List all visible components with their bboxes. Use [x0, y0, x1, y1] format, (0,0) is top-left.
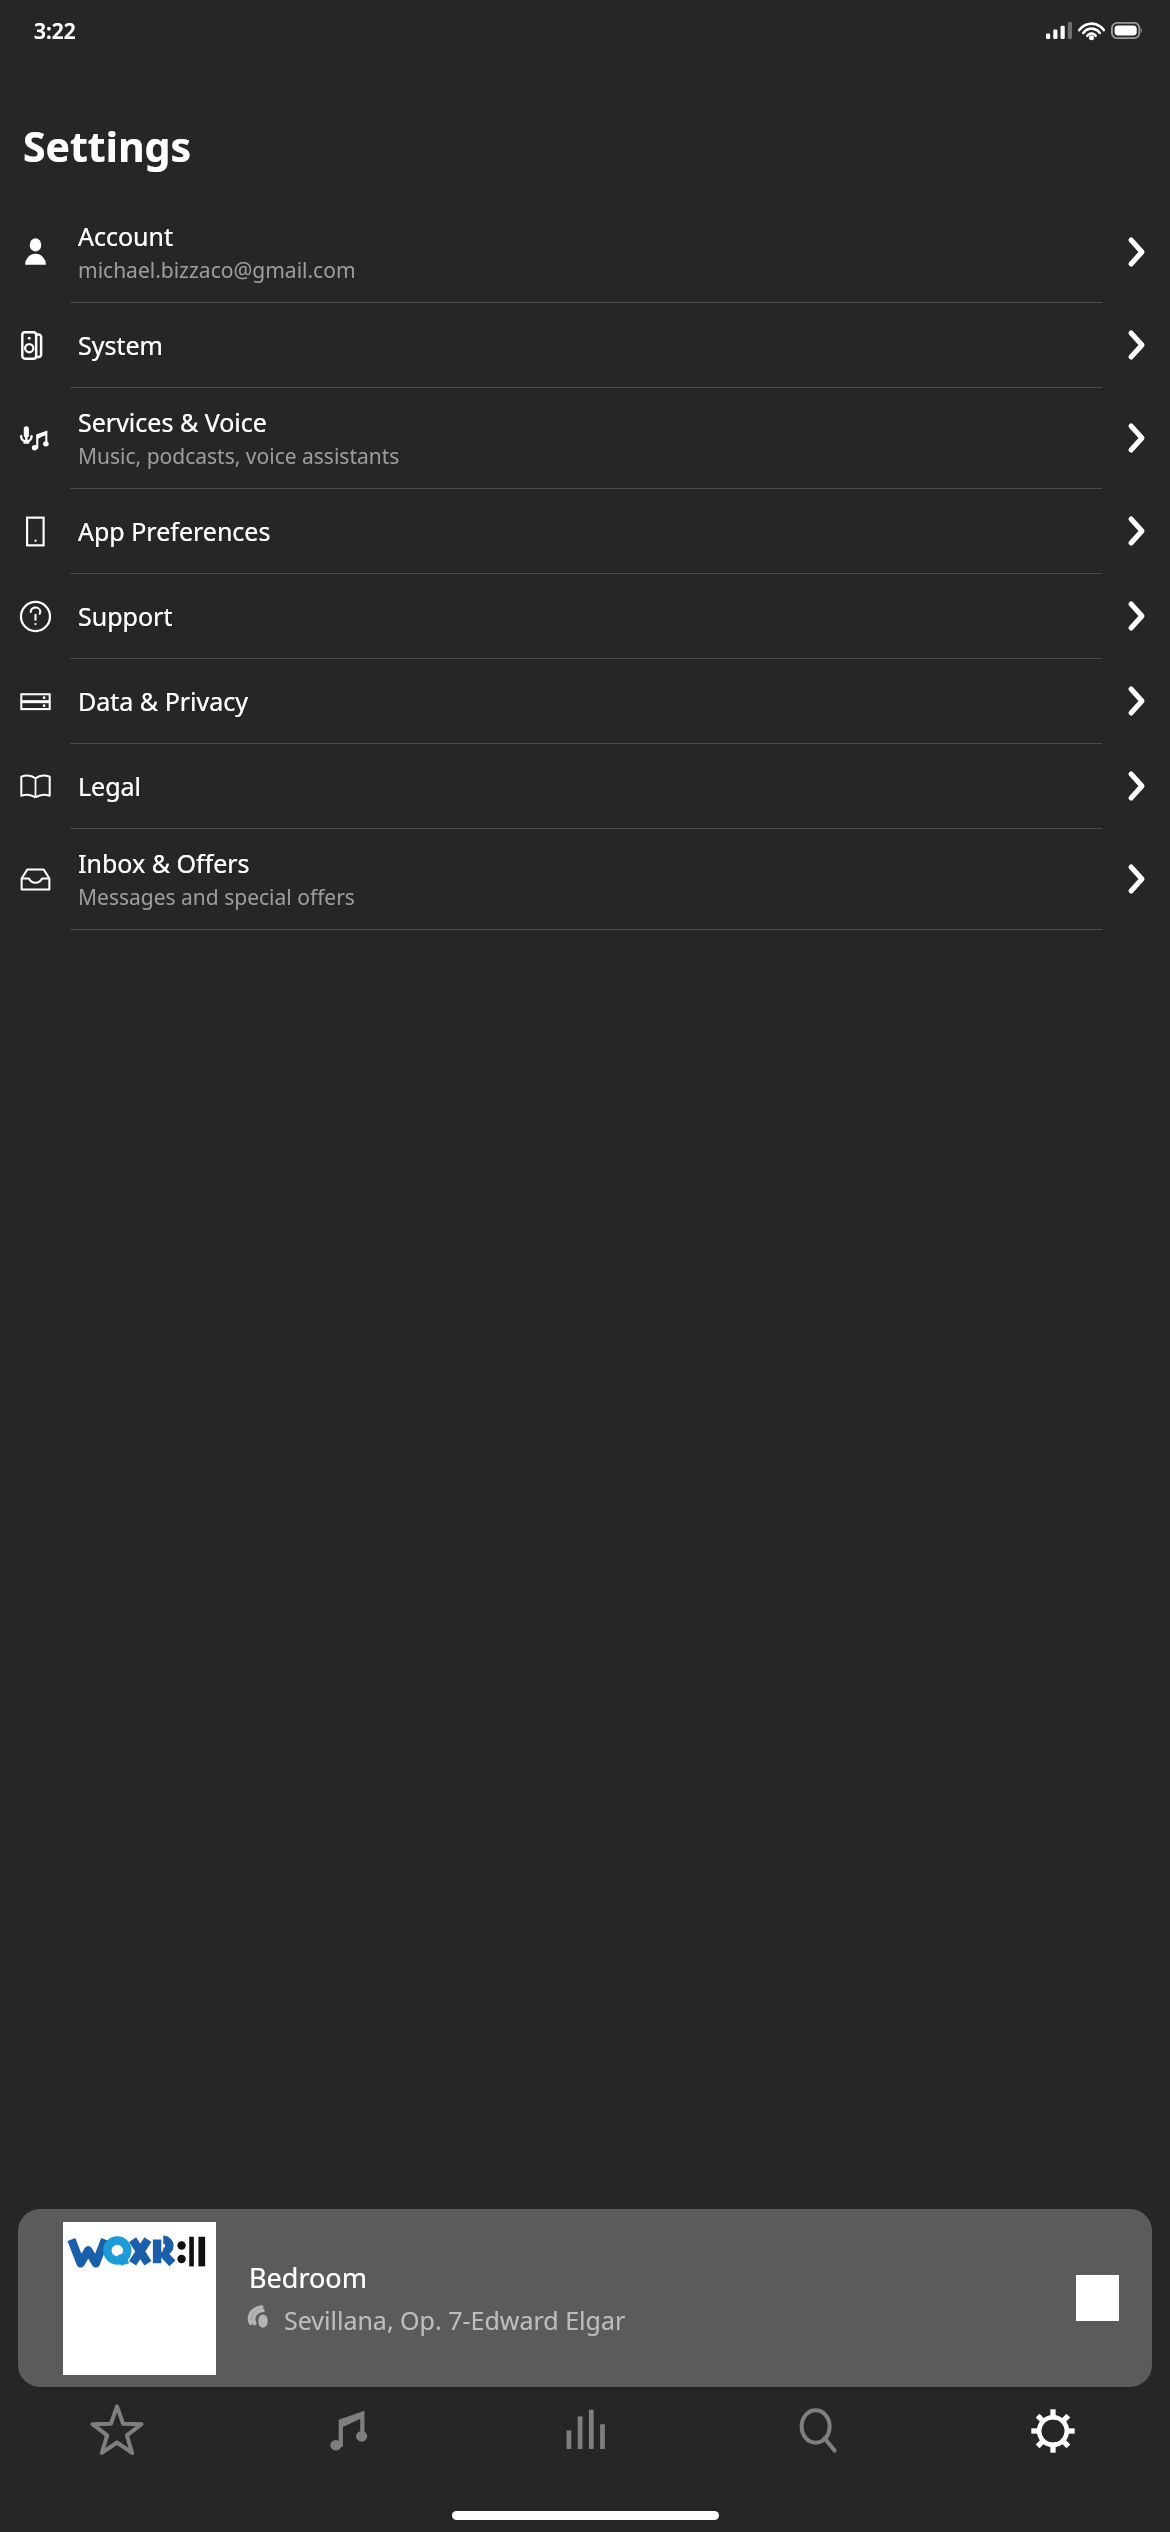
button[interactable]: Bedroom — [18, 2209, 1152, 2387]
staticText: 3:22 — [34, 17, 76, 46]
staticText: App Preferences — [78, 514, 271, 548]
staticText: Sevillana, Op. 7-Edward Elgar — [284, 2303, 626, 2337]
other: Services & Voice — [1102, 388, 1170, 488]
button[interactable]: Inbox & Offers — [0, 829, 1170, 929]
staticText: Legal — [78, 769, 142, 803]
button[interactable]: Services & Voice — [0, 388, 1170, 488]
button[interactable]: Legal — [0, 744, 1170, 828]
staticText: Account — [78, 219, 174, 253]
button[interactable]: Support — [0, 574, 1170, 658]
staticText: Bedroom — [249, 2259, 367, 2296]
button[interactable]: Data & Privacy — [0, 659, 1170, 743]
button[interactable]: Settings — [936, 2393, 1170, 2497]
button[interactable]: Stats — [468, 2393, 702, 2497]
other: Legal — [1102, 744, 1170, 828]
other: Data & Privacy — [1102, 659, 1170, 743]
staticText: Data & Privacy — [78, 684, 249, 718]
button[interactable]: Account — [0, 202, 1170, 302]
button[interactable]: Favorites — [0, 2393, 234, 2497]
button[interactable]: System — [0, 303, 1170, 387]
staticText: michael.bizzaco@gmail.com — [78, 256, 356, 285]
button[interactable]: Search — [702, 2393, 936, 2497]
staticText: System — [78, 328, 163, 362]
staticText: Music, podcasts, voice assistants — [78, 442, 400, 471]
other: App Preferences — [1102, 489, 1170, 573]
staticText: Settings — [23, 118, 192, 174]
other: Inbox & Offers — [1102, 829, 1170, 929]
other: Support — [1102, 574, 1170, 658]
button[interactable]: App Preferences — [0, 489, 1170, 573]
staticText: Messages and special offers — [78, 883, 355, 912]
staticText: Services & Voice — [78, 405, 267, 439]
other: Account — [1102, 202, 1170, 302]
button[interactable]: Stop — [1042, 2209, 1152, 2387]
staticText: Inbox & Offers — [78, 846, 250, 880]
staticText: Support — [78, 599, 173, 633]
button[interactable]: Music — [234, 2393, 468, 2497]
other: System — [1102, 303, 1170, 387]
